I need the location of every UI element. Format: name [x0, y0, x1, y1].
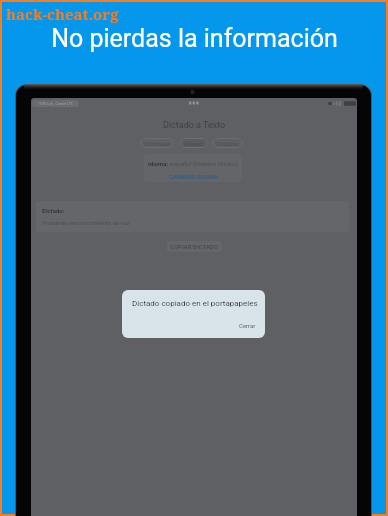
button[interactable]: Continuar	[140, 138, 174, 148]
staticText: Dictado:	[42, 207, 65, 214]
staticText: No pierdas la información	[51, 24, 338, 53]
staticText: Finalizar	[216, 140, 239, 147]
staticText: Dictado a Texto	[163, 120, 226, 131]
staticText: Dictado copiado en el portapapeles	[132, 299, 258, 308]
button[interactable]: Finalizar	[212, 138, 243, 148]
staticText: hack-cheat.org	[6, 4, 119, 24]
button[interactable]: Pausar	[180, 138, 207, 148]
staticText: Continuar	[144, 140, 170, 147]
staticText: Cerrar	[239, 322, 256, 329]
staticText: CAMBIAR IDIOMA	[169, 173, 219, 180]
button[interactable]: CAMBIAR IDIOMA	[169, 173, 219, 180]
button[interactable]: COPIAR DICTADO	[167, 241, 222, 252]
staticText: Probando reconocimiento de voz	[42, 219, 130, 226]
other: Status icons	[327, 100, 353, 107]
button[interactable]: Cerrar	[230, 317, 265, 338]
staticText: Pausar	[184, 140, 203, 147]
staticText: COPIAR DICTADO	[170, 243, 219, 250]
staticText: Idioma:	[148, 160, 170, 167]
staticText: 9:08 a.m. Carrier LTE	[39, 102, 73, 106]
staticText: español (Estados Unidos)	[170, 160, 239, 167]
